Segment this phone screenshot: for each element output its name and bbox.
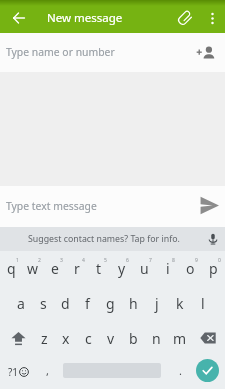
button[interactable]: Add recipient (193, 41, 217, 65)
staticText: 7 (149, 257, 152, 264)
button[interactable]: g (99, 286, 122, 321)
staticText: 2 (38, 257, 41, 264)
button[interactable]: Send (196, 192, 222, 218)
staticText: 0 (218, 257, 221, 264)
staticText: g (106, 294, 115, 313)
button[interactable]: f (76, 286, 99, 321)
button[interactable]: y (110, 251, 133, 286)
staticText: q (7, 259, 16, 278)
staticText: 1 (16, 257, 19, 264)
staticText: j (155, 294, 159, 313)
staticText: f (85, 294, 90, 313)
staticText: c (85, 329, 92, 348)
staticText: x (62, 329, 70, 348)
staticText: 6 (126, 257, 129, 264)
button[interactable]: q (0, 251, 22, 286)
staticText: 8 (172, 257, 175, 264)
button[interactable]: z (33, 321, 55, 355)
button[interactable]: p (202, 251, 225, 286)
button[interactable]: k (168, 286, 191, 321)
staticText: v (107, 329, 115, 348)
staticText: w (27, 259, 39, 278)
staticText: h (129, 294, 138, 313)
button[interactable]: o (179, 251, 202, 286)
staticText: . (179, 363, 182, 378)
staticText: u (140, 259, 149, 278)
button[interactable]: Symbols (0, 355, 36, 389)
button[interactable]: Done (196, 359, 219, 382)
staticText: b (129, 329, 138, 348)
staticText: New message (47, 10, 123, 26)
staticText: y (118, 259, 126, 278)
staticText: ?1 (8, 365, 19, 379)
staticText: r (74, 259, 80, 278)
button[interactable]: s (32, 286, 54, 321)
button[interactable]: m (168, 321, 191, 355)
staticText: Type name or number (6, 45, 115, 59)
staticText: n (152, 329, 161, 348)
staticText: 4 (82, 257, 85, 264)
staticText: k (176, 294, 184, 313)
button[interactable]: w (22, 251, 44, 286)
button[interactable]: Voice input (205, 231, 221, 247)
staticText: s (40, 294, 47, 313)
button[interactable]: Navigate up (5, 4, 33, 32)
staticText: Suggest contact names? Tap for info. (28, 233, 180, 245)
staticText: a (17, 294, 25, 313)
staticText: e (51, 259, 59, 278)
button[interactable]: u (133, 251, 156, 286)
staticText: m (173, 329, 187, 348)
button[interactable]: j (145, 286, 168, 321)
staticText: p (209, 259, 218, 278)
button[interactable]: Shift (0, 321, 33, 355)
button[interactable]: r (66, 251, 88, 286)
button[interactable]: , (36, 355, 58, 389)
staticText: 3 (60, 257, 63, 264)
staticText: d (61, 294, 70, 313)
button[interactable]: t (88, 251, 110, 286)
button[interactable]: v (99, 321, 122, 355)
button[interactable]: b (122, 321, 145, 355)
staticText: l (201, 294, 205, 313)
button[interactable]: c (77, 321, 99, 355)
button[interactable]: e (44, 251, 66, 286)
button[interactable]: d (54, 286, 76, 321)
button[interactable]: Attach (170, 3, 198, 31)
staticText: , (46, 363, 49, 378)
button[interactable]: x (55, 321, 77, 355)
button[interactable]: . (170, 355, 190, 389)
button[interactable]: l (191, 286, 214, 321)
staticText: i (166, 259, 170, 278)
staticText: 9 (195, 257, 198, 264)
staticText: t (96, 259, 102, 278)
button[interactable]: a (10, 286, 32, 321)
button[interactable]: Type text message (0, 186, 225, 227)
button[interactable]: Suggest contact names? Tap for info. (0, 227, 225, 251)
staticText: o (186, 259, 195, 278)
button[interactable]: Backspace (191, 321, 225, 355)
button[interactable]: n (145, 321, 168, 355)
staticText: z (41, 329, 48, 348)
button[interactable]: Type name or number (0, 33, 225, 72)
button[interactable]: More options (199, 5, 225, 31)
button[interactable]: h (122, 286, 145, 321)
staticText: 5 (104, 257, 107, 264)
staticText: Type text message (6, 199, 97, 213)
button[interactable]: i (156, 251, 179, 286)
